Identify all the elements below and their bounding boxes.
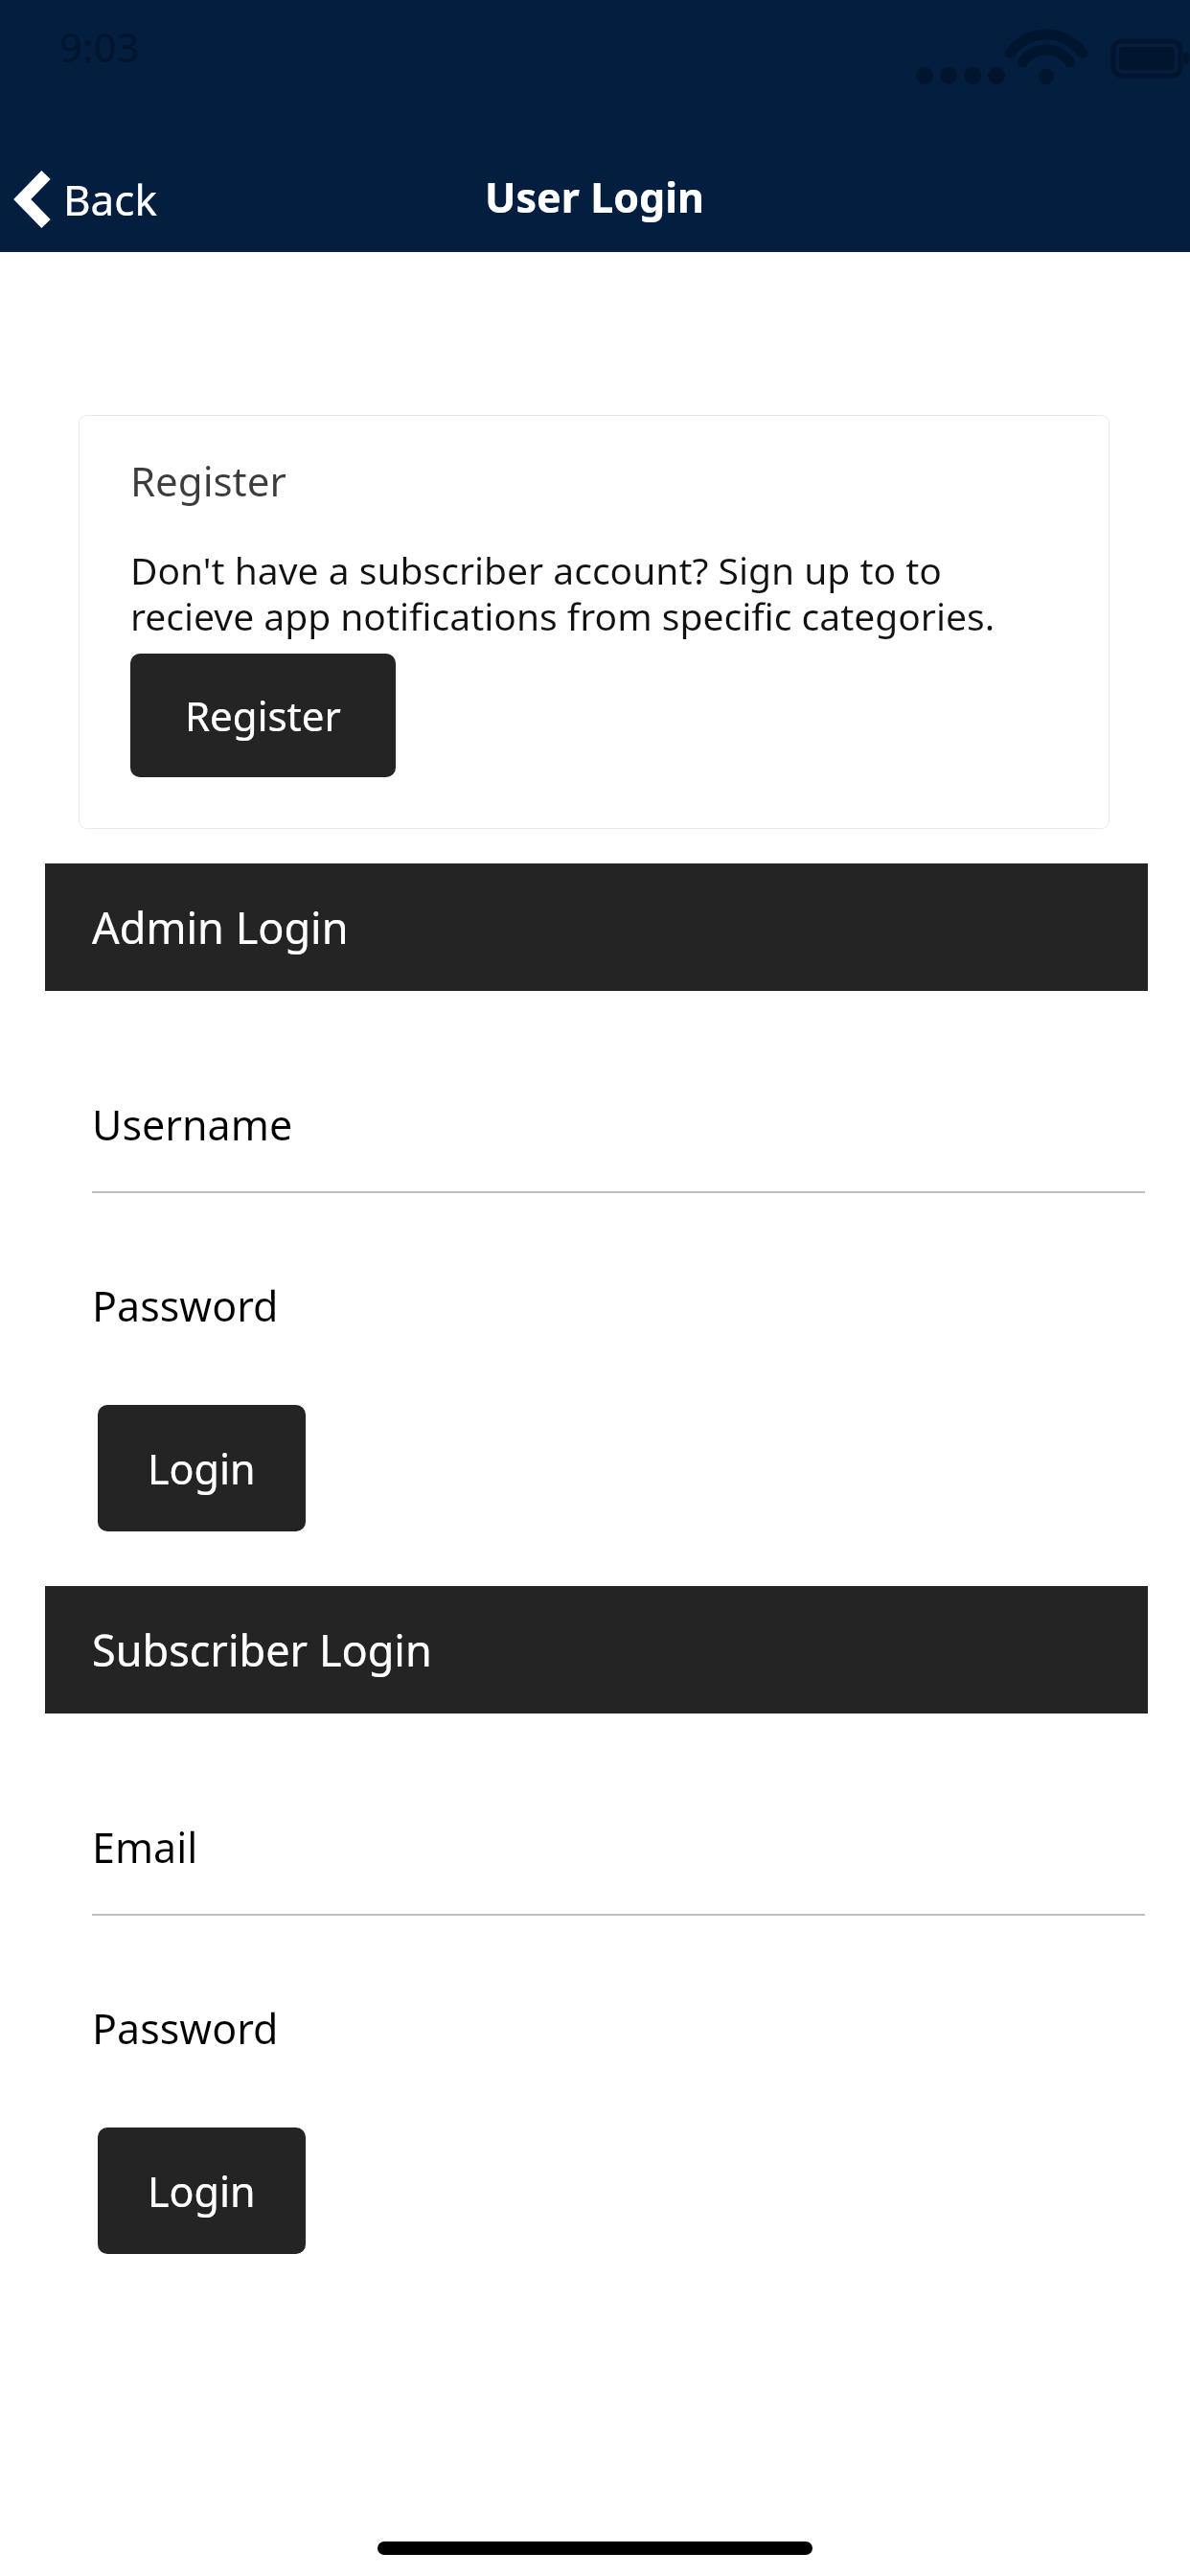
staticText: Password	[92, 1277, 279, 1334]
staticText: Don't have a subscriber account? Sign up…	[130, 544, 1071, 642]
staticText: User Login	[485, 169, 705, 225]
staticText: Login	[148, 1440, 256, 1497]
staticText: Password	[92, 2000, 279, 2057]
staticText: Back	[63, 171, 157, 228]
staticText: Login	[148, 2163, 256, 2219]
staticText: Subscriber Login	[92, 1621, 432, 1679]
staticText: Username	[92, 1096, 293, 1153]
button[interactable]: Subscriber Login	[45, 1586, 1148, 1713]
button[interactable]: Register	[130, 654, 396, 777]
staticText: Register	[185, 688, 341, 743]
staticText: Admin Login	[92, 898, 349, 956]
button[interactable]: Back	[0, 147, 176, 252]
button[interactable]: Admin Login	[45, 863, 1148, 991]
button[interactable]: Login	[98, 1405, 306, 1531]
staticText: Register	[130, 453, 286, 508]
staticText: Email	[92, 1819, 198, 1875]
staticText: 9:03	[59, 19, 140, 74]
button[interactable]: Login	[98, 2127, 306, 2254]
